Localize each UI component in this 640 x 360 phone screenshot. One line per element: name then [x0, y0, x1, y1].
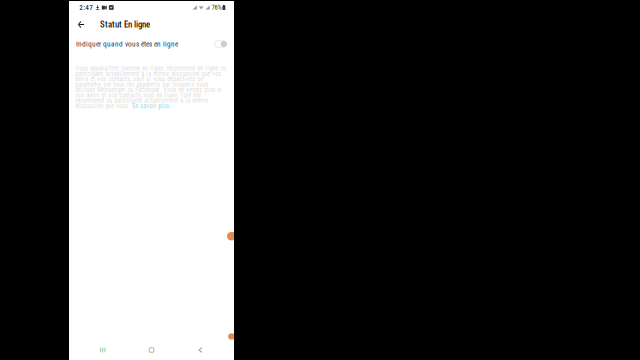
staticText: 2:47: [79, 3, 93, 12]
button[interactable]: Accueil: [136, 342, 166, 358]
staticText: Indiquer quand vous êtes en ligne: [76, 40, 178, 48]
staticText: Vous apparaîtrez comme en ligne, récemme…: [75, 66, 226, 109]
button[interactable]: Indiquer quand vous êtes en ligne: [69, 35, 234, 53]
staticText: Statut En ligne: [100, 19, 150, 30]
button[interactable]: Retour: [185, 342, 215, 358]
button[interactable]: Applications récentes: [88, 342, 118, 358]
staticText: 76%: [211, 4, 221, 11]
button[interactable]: Retour: [72, 14, 89, 35]
